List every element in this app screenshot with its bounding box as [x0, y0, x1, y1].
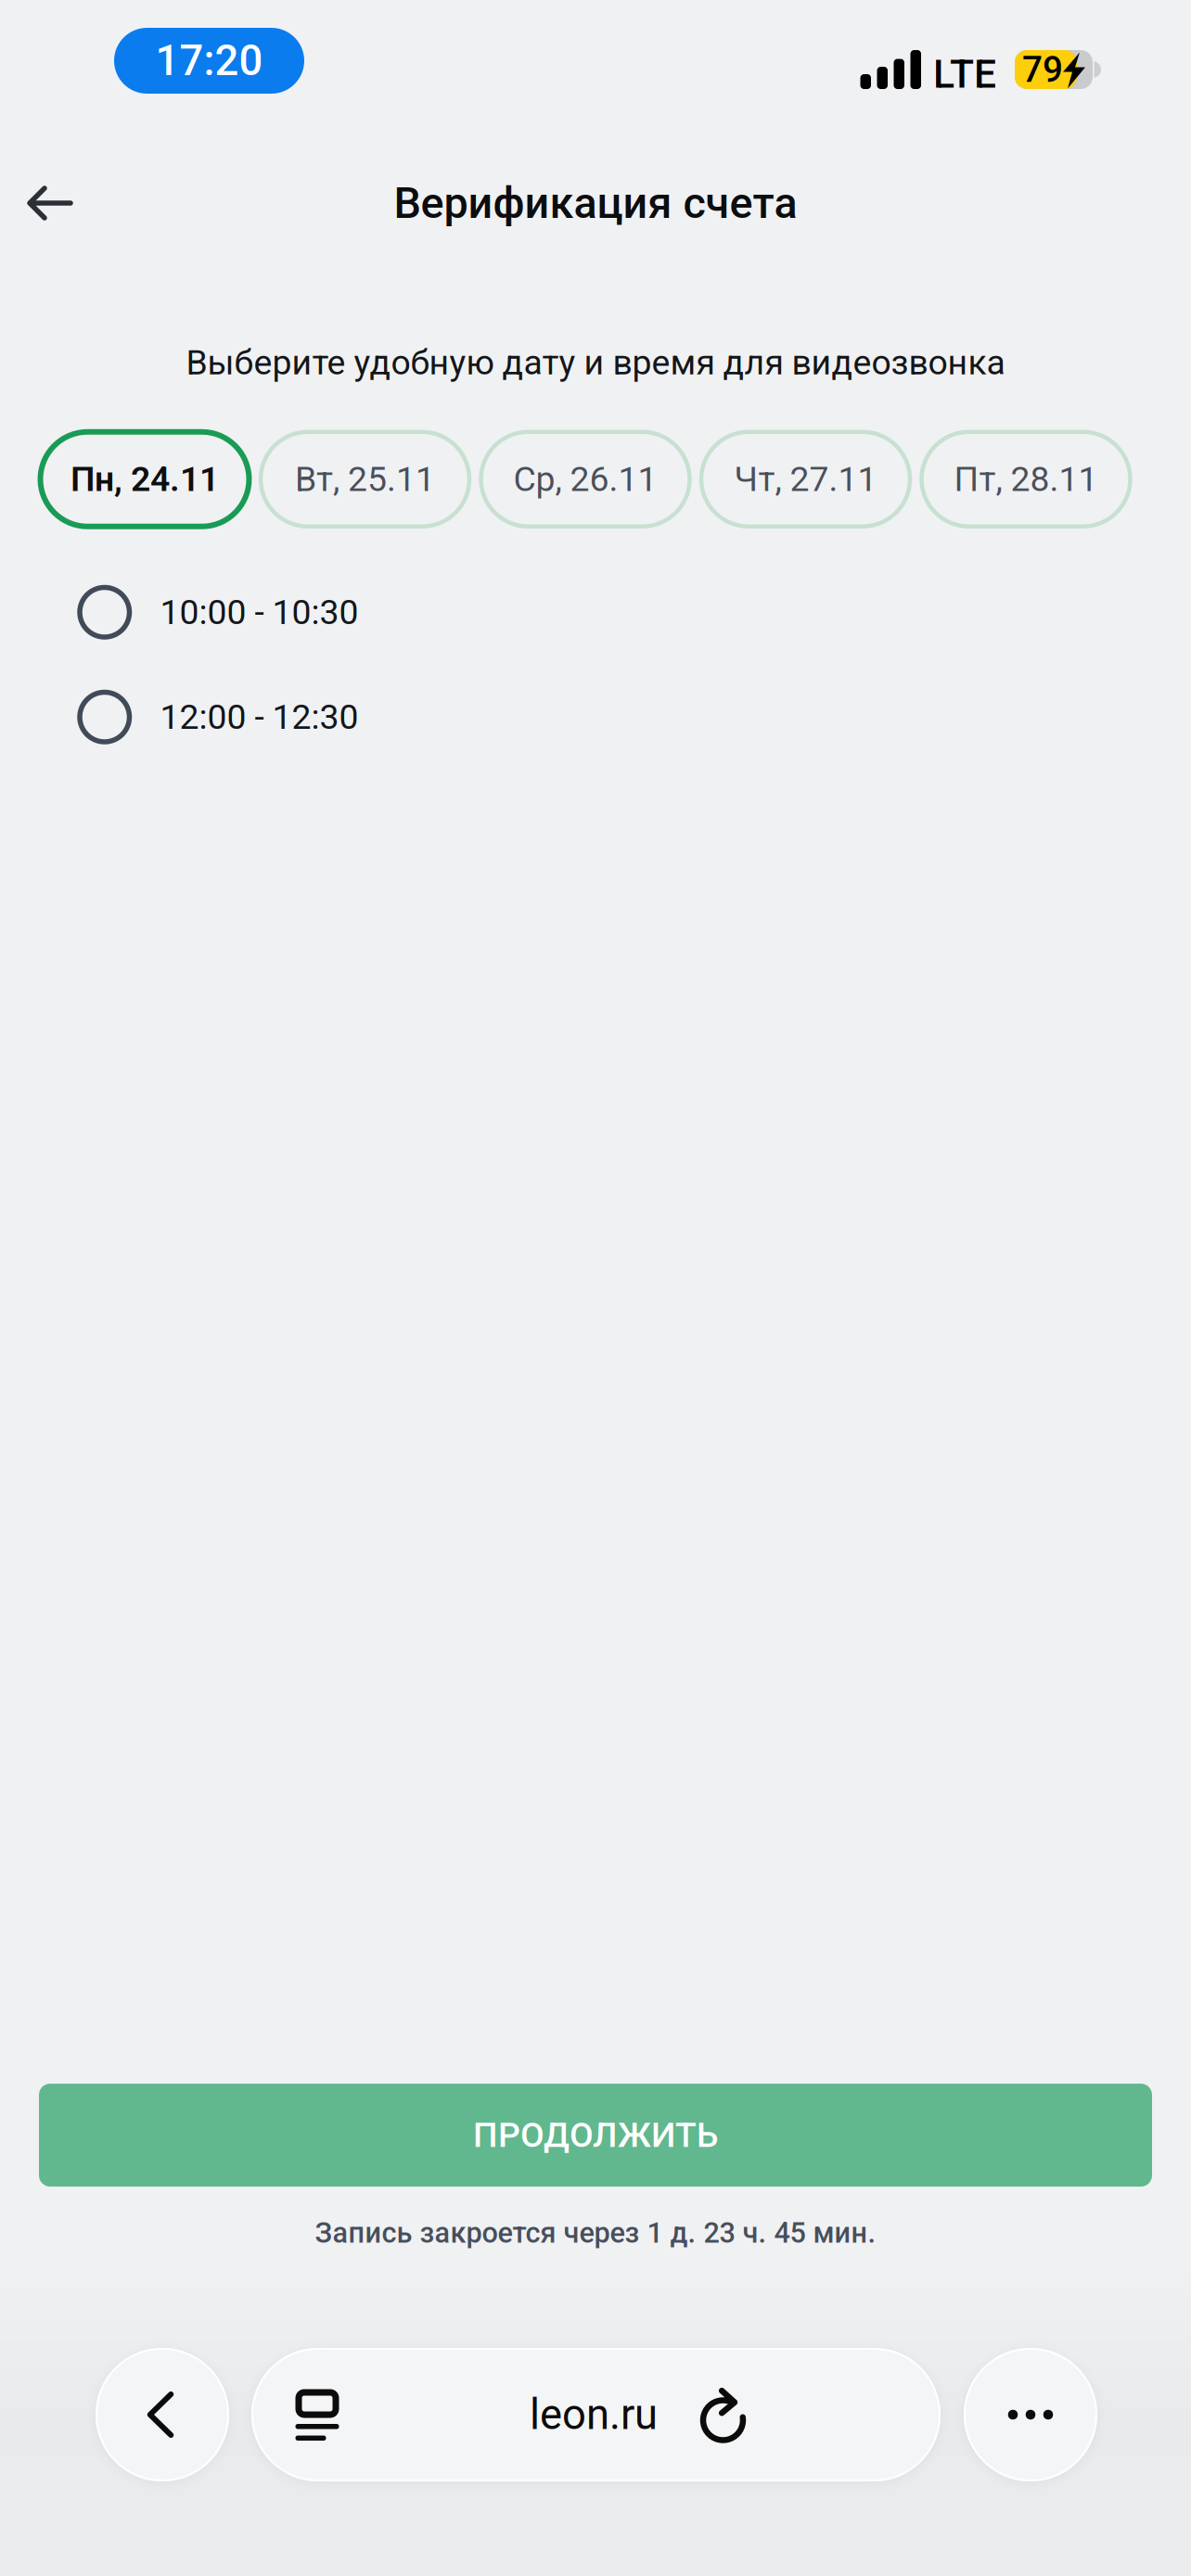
staticText: ПРОДОЛЖИТЬ — [473, 2115, 718, 2155]
staticText: Чт, 27.11 — [734, 459, 877, 499]
button[interactable]: Чт, 27.11 — [701, 432, 910, 526]
staticText: Пн, 24.11 — [70, 459, 219, 499]
staticText: 17:20 — [155, 36, 263, 85]
button[interactable]: Пн, 24.11 — [40, 432, 249, 526]
button[interactable]: Back — [6, 159, 95, 248]
staticText: 12:00 - 12:30 — [160, 697, 359, 737]
staticText: 10:00 - 10:30 — [160, 592, 359, 633]
button[interactable]: 12:00 - 12:30 — [0, 665, 1191, 769]
button[interactable]: Back — [96, 2348, 229, 2481]
staticText: Пт, 28.11 — [954, 459, 1098, 499]
button[interactable]: Вт, 25.11 — [261, 432, 469, 526]
button[interactable]: Ср, 26.11 — [481, 432, 690, 526]
staticText: Верификация счета — [394, 178, 797, 228]
staticText: LTE — [933, 51, 996, 97]
staticText: 79 — [1022, 48, 1063, 91]
button[interactable]: ПРОДОЛЖИТЬ — [39, 2084, 1152, 2187]
staticText: Вт, 25.11 — [295, 459, 435, 499]
button[interactable]: Reader view — [274, 2348, 361, 2481]
staticText: Ср, 26.11 — [513, 459, 657, 499]
button[interactable]: Пт, 28.11 — [922, 432, 1130, 526]
staticText: Выберите удобную дату и время для видеоз… — [186, 342, 1005, 383]
staticText: Запись закроется через 1 д. 23 ч. 45 мин… — [315, 2216, 876, 2250]
button[interactable]: More — [964, 2348, 1097, 2481]
button[interactable]: Reload — [694, 2348, 753, 2481]
button[interactable]: 10:00 - 10:30 — [0, 560, 1191, 665]
staticText: leon.ru — [530, 2390, 658, 2439]
